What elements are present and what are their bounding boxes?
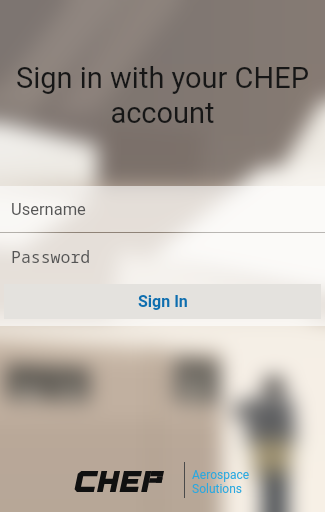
button[interactable]: Password [0, 233, 325, 279]
button[interactable]: Username [0, 186, 325, 232]
staticText: Aerospace [192, 468, 250, 482]
staticText: Sign in with your CHEP account [0, 61, 325, 130]
staticText: Username [11, 200, 86, 219]
staticText: Sign In [138, 292, 188, 311]
staticText: Solutions [192, 482, 243, 496]
staticText: Password [11, 245, 91, 267]
button[interactable]: Sign In [4, 284, 321, 319]
other: CHEP [74, 471, 166, 492]
